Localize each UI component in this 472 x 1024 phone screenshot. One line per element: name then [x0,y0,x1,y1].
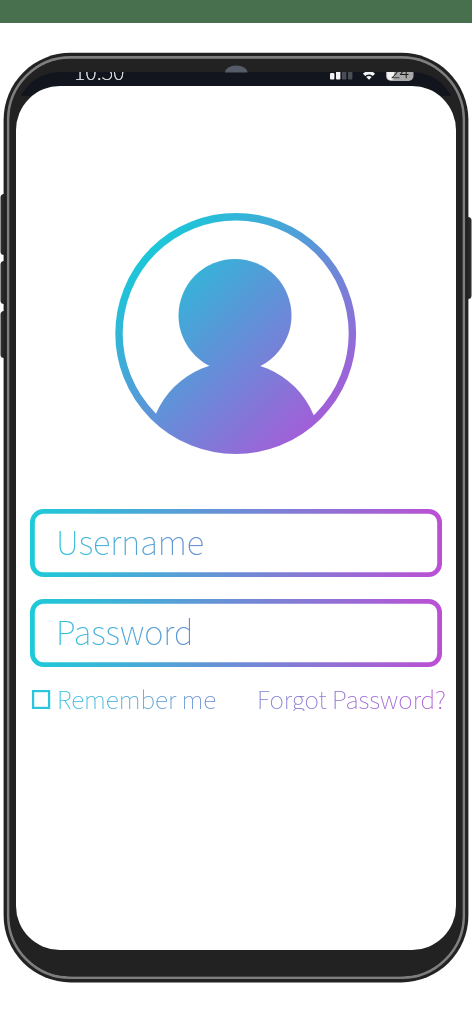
staticText: 24 [391,72,409,86]
staticText: Forgot Password? [257,681,446,711]
button[interactable]: Username [30,509,442,577]
staticText: Remember me [57,681,217,711]
button[interactable]: Remember me [30,681,217,711]
button[interactable]: Forgot Password? [257,681,446,711]
button[interactable]: Password [30,599,442,667]
staticText: Password [56,608,194,659]
staticText: Username [56,518,204,569]
staticText: 10:50 [74,72,125,86]
